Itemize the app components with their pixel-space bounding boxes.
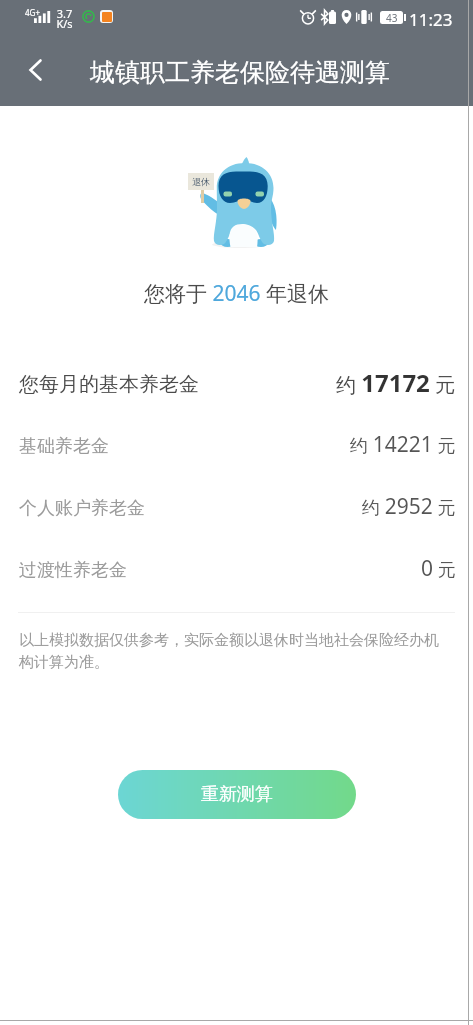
button[interactable]: 重新测算 bbox=[118, 770, 356, 819]
staticText: 约 17172 元 bbox=[336, 366, 456, 399]
staticText: 以上模拟数据仅供参考，实际金额以退休时当地社会保险经办机构计算为准。 bbox=[19, 631, 447, 672]
staticText: 3.7 K/s bbox=[56, 6, 73, 31]
staticText: 重新测算 bbox=[201, 783, 273, 806]
button[interactable]: 您每月的基本养老金 bbox=[0, 353, 473, 415]
button[interactable]: 过渡性养老金 bbox=[0, 539, 473, 601]
staticText: 43 bbox=[386, 11, 398, 24]
button[interactable]: 个人账户养老金 bbox=[0, 477, 473, 539]
staticText: 11:23 bbox=[409, 8, 453, 31]
staticText: 0 元 bbox=[421, 554, 456, 583]
staticText: 基础养老金 bbox=[19, 435, 109, 458]
staticText: 约 14221 元 bbox=[350, 430, 456, 459]
staticText: 4G+ bbox=[25, 7, 40, 18]
staticText: 退休 bbox=[192, 176, 210, 187]
button[interactable]: 基础养老金 bbox=[0, 415, 473, 477]
staticText: 约 2952 元 bbox=[362, 492, 456, 521]
staticText: 城镇职工养老保险待遇测算 bbox=[90, 57, 390, 88]
staticText: 您将于 2046 年退休 bbox=[144, 279, 329, 307]
staticText: 个人账户养老金 bbox=[19, 497, 145, 520]
staticText: 过渡性养老金 bbox=[19, 559, 127, 582]
button[interactable]: Back bbox=[0, 38, 72, 106]
staticText: 您每月的基本养老金 bbox=[19, 372, 199, 397]
